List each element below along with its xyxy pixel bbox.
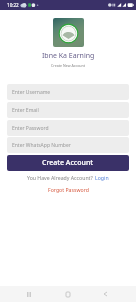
button[interactable]: Back: [98, 287, 112, 301]
staticText: Create New Account: [51, 63, 86, 68]
button[interactable]: Home: [61, 287, 75, 301]
staticText: Ibne Ka Earning: [42, 51, 95, 61]
staticText: Enter WhatsApp Number: [12, 142, 71, 149]
button[interactable]: Recent apps: [22, 287, 36, 301]
button[interactable]: Enter Password: [7, 120, 129, 136]
button[interactable]: Login: [95, 174, 109, 181]
button[interactable]: Forgot Password: [48, 186, 89, 193]
button[interactable]: Enter WhatsApp Number: [7, 137, 129, 153]
staticText: Enter Username: [12, 89, 51, 96]
button[interactable]: Enter Email: [7, 102, 129, 118]
staticText: Enter Email: [12, 107, 39, 114]
button[interactable]: Enter Username: [7, 84, 129, 100]
staticText: You Have Already Account?: [27, 174, 95, 181]
staticText: 10:22: [7, 2, 19, 8]
staticText: Enter Password: [12, 125, 49, 132]
staticText: Create Account: [42, 158, 94, 168]
button[interactable]: Create Account: [7, 155, 129, 171]
